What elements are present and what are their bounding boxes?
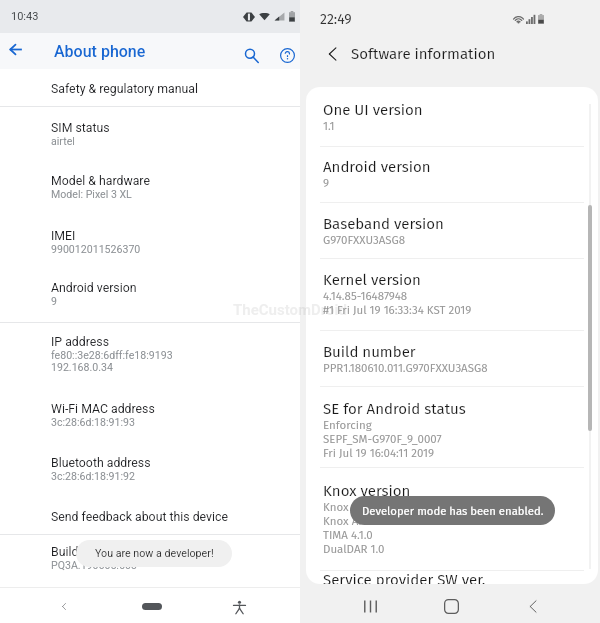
staticText: Kernel version (323, 271, 421, 289)
button[interactable]: Accessibility (219, 591, 259, 623)
button[interactable]: Home (122, 589, 182, 623)
staticText: SE for Android status (323, 400, 466, 418)
staticText: Fri Jul 19 16:04:11 2019 (323, 446, 435, 460)
button[interactable]: IMEI (0, 229, 300, 255)
staticText: PQ3A.190605.003 (51, 559, 138, 571)
staticText: Wi-Fi MAC address (51, 402, 155, 416)
staticText: Model: Pixel 3 XL (51, 188, 132, 200)
button[interactable]: About phone (54, 42, 146, 61)
button[interactable]: Software information (351, 45, 496, 63)
staticText: Model & hardware (51, 174, 150, 188)
staticText: SEPF_SM-G970F_9_0007 (323, 432, 442, 446)
button[interactable]: Android version (0, 281, 300, 307)
button[interactable]: SIM status (0, 121, 300, 147)
staticText: Baseband version (323, 215, 444, 233)
button[interactable]: Back (511, 587, 555, 623)
button[interactable]: SE for Android status (306, 400, 598, 460)
staticText: IMEI (51, 229, 76, 243)
staticText: Knox 3.3 (323, 500, 367, 514)
staticText: 9 (51, 295, 57, 307)
button[interactable]: Home (429, 587, 473, 623)
staticText: Service provider SW ver. (323, 571, 486, 584)
staticText: Knox API level 28 (323, 514, 412, 528)
button[interactable]: Knox version (306, 482, 598, 556)
button[interactable]: Safety & regulatory manual (0, 82, 300, 96)
staticText: Android version (51, 281, 137, 295)
button[interactable]: Back (321, 43, 343, 65)
staticText: Safety & regulatory manual (51, 82, 198, 96)
button[interactable]: Kernel version (306, 271, 598, 317)
staticText: TIMA 4.1.0 (323, 528, 373, 542)
staticText: Developer mode has been enabled. (362, 504, 544, 518)
button[interactable]: Search (238, 42, 265, 69)
button[interactable]: Android version (306, 158, 598, 190)
button[interactable]: Back (9, 44, 34, 69)
button[interactable]: Recents (348, 587, 392, 623)
staticText: PPR1.180610.011.G970FXXU3ASG8 (323, 361, 488, 375)
button[interactable]: Build number (306, 343, 598, 375)
staticText: Enforcing (323, 418, 372, 432)
button[interactable]: Wi-Fi MAC address (0, 402, 300, 428)
staticText: #1 Fri Jul 19 16:33:34 KST 2019 (323, 303, 472, 317)
staticText: airtel (51, 135, 75, 147)
button[interactable]: One UI version (306, 101, 598, 133)
button[interactable]: Bluetooth address (0, 456, 300, 482)
staticText: Android version (323, 158, 431, 176)
staticText: 3c:28:6d:18:91:93 (51, 416, 135, 428)
staticText: One UI version (323, 101, 423, 119)
button[interactable]: Build number (0, 545, 300, 571)
staticText: TheCustomDroid (233, 301, 347, 319)
staticText: 990012011526370 (51, 243, 141, 255)
button[interactable]: IP address (0, 335, 300, 373)
staticText: 4.14.85-16487948 (323, 289, 408, 303)
staticText: 9 (323, 176, 330, 190)
staticText: G970FXXU3ASG8 (323, 233, 406, 247)
staticText: Bluetooth address (51, 456, 151, 470)
staticText: Build number (323, 343, 416, 361)
button[interactable]: Help (274, 42, 301, 69)
staticText: Build number (51, 545, 124, 559)
staticText: Knox version (323, 482, 411, 500)
button[interactable]: Back (44, 589, 84, 623)
staticText: DualDAR 1.0 (323, 542, 385, 556)
staticText: SIM status (51, 121, 110, 135)
staticText: 3c:28:6d:18:91:92 (51, 470, 135, 482)
staticText: IP address (51, 335, 109, 349)
button[interactable]: Service provider SW ver. (306, 571, 598, 584)
staticText: 192.168.0.34 (51, 361, 113, 373)
button[interactable]: Baseband version (306, 215, 598, 247)
staticText: You are now a developer! (95, 547, 214, 560)
staticText: 22:49 (320, 11, 352, 28)
staticText: 1.1 (323, 119, 335, 133)
button[interactable]: Send feedback about this device (0, 510, 300, 524)
staticText: 10:43 (11, 10, 39, 23)
staticText: Send feedback about this device (51, 510, 228, 524)
button[interactable]: Model & hardware (0, 174, 300, 200)
staticText: fe80::3e28:6dff:fe18:9193 (51, 349, 173, 361)
